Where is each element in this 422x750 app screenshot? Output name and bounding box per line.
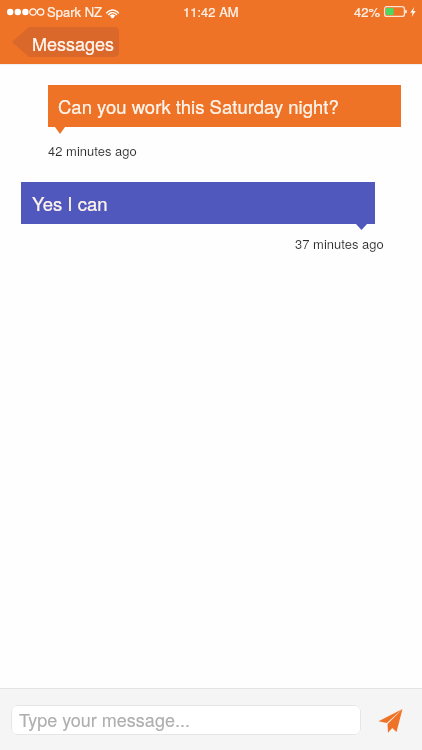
- button[interactable]: Send: [372, 702, 408, 738]
- button[interactable]: Back to Messages: [12, 27, 119, 57]
- staticText: Messages: [32, 30, 115, 56]
- staticText: Can you work this Saturday night?: [58, 93, 339, 119]
- staticText: Type your message...: [19, 706, 190, 732]
- staticText: Spark NZ: [47, 2, 102, 21]
- staticText: 11:42 AM: [183, 2, 239, 21]
- staticText: 42 minutes ago: [48, 141, 137, 160]
- button[interactable]: Type your message...: [11, 705, 361, 735]
- staticText: 42%: [354, 2, 381, 21]
- staticText: Yes I can: [32, 190, 108, 216]
- staticText: 37 minutes ago: [295, 234, 384, 253]
